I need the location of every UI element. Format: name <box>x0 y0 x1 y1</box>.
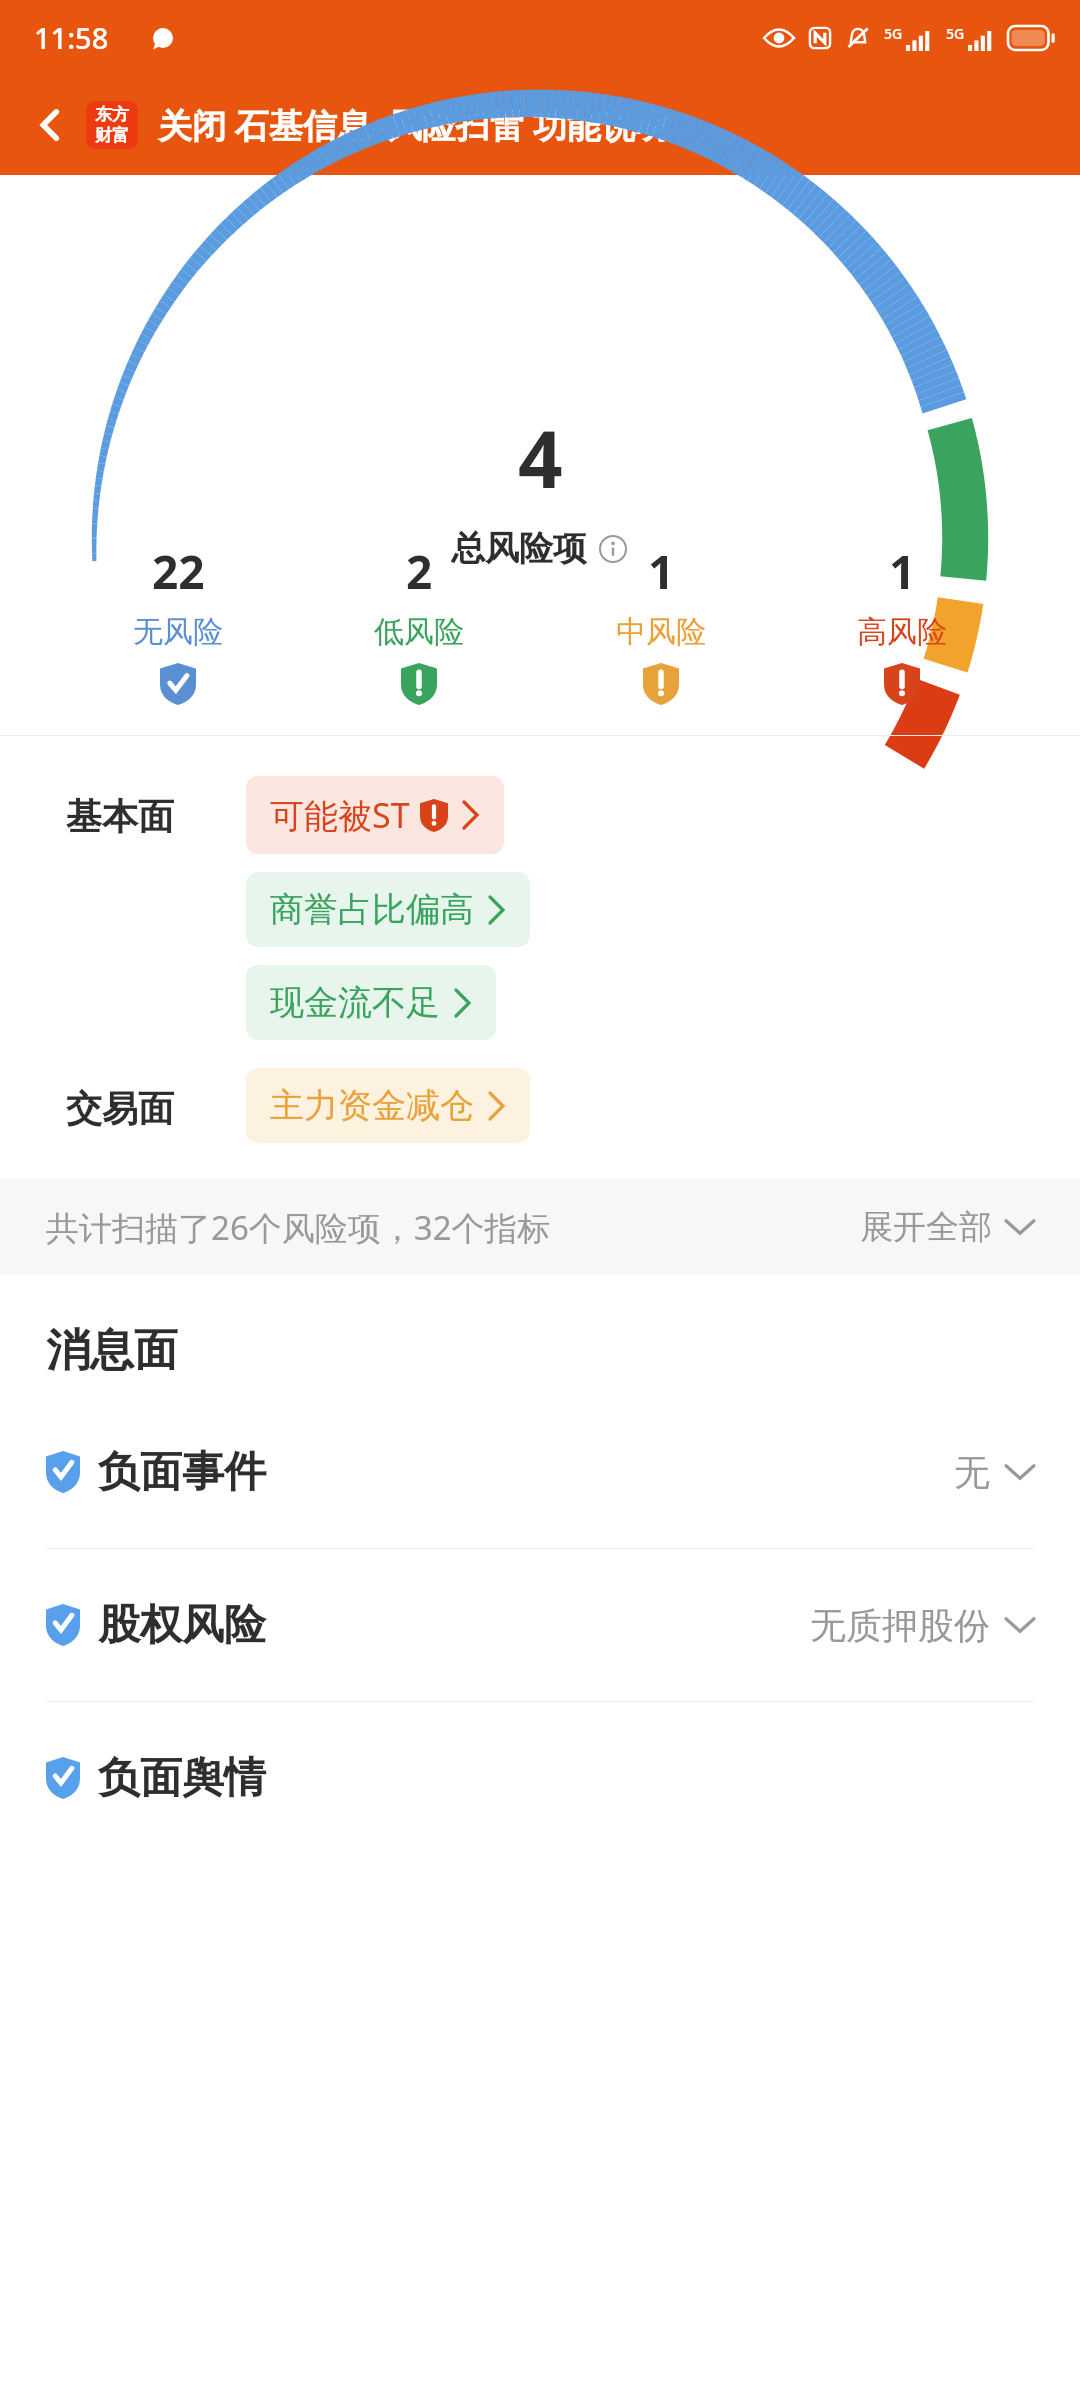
staticText: 东方 <box>95 104 129 125</box>
staticText: 1 <box>648 540 675 603</box>
button[interactable]: Back <box>22 96 80 154</box>
button[interactable]: 可能被ST <box>246 776 504 854</box>
staticText: 商誉占比偏高 <box>270 888 474 931</box>
staticText: 5G <box>946 24 965 43</box>
staticText: 2 <box>406 540 433 603</box>
button[interactable]: 1 <box>598 536 724 709</box>
staticText: 4 <box>518 405 563 511</box>
staticText: 无质押股份 <box>810 1603 990 1648</box>
button[interactable]: 主力资金减仓 <box>246 1068 530 1143</box>
staticText: 现金流不足 <box>270 981 440 1024</box>
staticText: 股权风险 <box>98 1599 266 1652</box>
button[interactable]: 说明 <box>597 533 629 565</box>
staticText: 1 <box>889 540 916 603</box>
staticText: 总风险项 <box>451 527 587 570</box>
button[interactable]: 1 <box>839 536 965 709</box>
staticText: 低风险 <box>374 613 464 651</box>
staticText: 交易面 <box>66 1086 246 1131</box>
staticText: 可能被ST <box>270 792 410 838</box>
button[interactable]: 共计扫描了26个风险项，32个指标 <box>0 1179 1080 1275</box>
staticText: 无风险 <box>133 613 223 651</box>
button[interactable]: 负面事件 <box>0 1396 1080 1548</box>
staticText: 展开全部 <box>860 1206 992 1248</box>
staticText: 主力资金减仓 <box>270 1084 474 1127</box>
button[interactable]: 2 <box>356 536 482 709</box>
staticText: 财富 <box>95 125 129 146</box>
staticText: 5G <box>884 24 903 43</box>
staticText: 基本面 <box>66 794 246 839</box>
staticText: 中风险 <box>616 613 706 651</box>
staticText: 高风险 <box>857 613 947 651</box>
staticText: 负面事件 <box>98 1446 266 1499</box>
button[interactable]: 商誉占比偏高 <box>246 872 530 947</box>
button[interactable]: 负面舆情 <box>0 1702 1080 1854</box>
staticText: 消息面 <box>46 1323 178 1378</box>
button[interactable]: 22 <box>115 536 241 709</box>
staticText: 11:58 <box>34 18 109 57</box>
button[interactable]: 现金流不足 <box>246 965 496 1040</box>
staticText: 负面舆情 <box>98 1752 266 1805</box>
staticText: 共计扫描了26个风险项，32个指标 <box>46 1205 551 1250</box>
button[interactable]: 股权风险 <box>0 1549 1080 1701</box>
staticText: 无 <box>954 1450 990 1495</box>
staticText: 关闭 石基信息–风险扫雷 功能说明 <box>158 102 669 148</box>
staticText: 22 <box>152 540 205 603</box>
